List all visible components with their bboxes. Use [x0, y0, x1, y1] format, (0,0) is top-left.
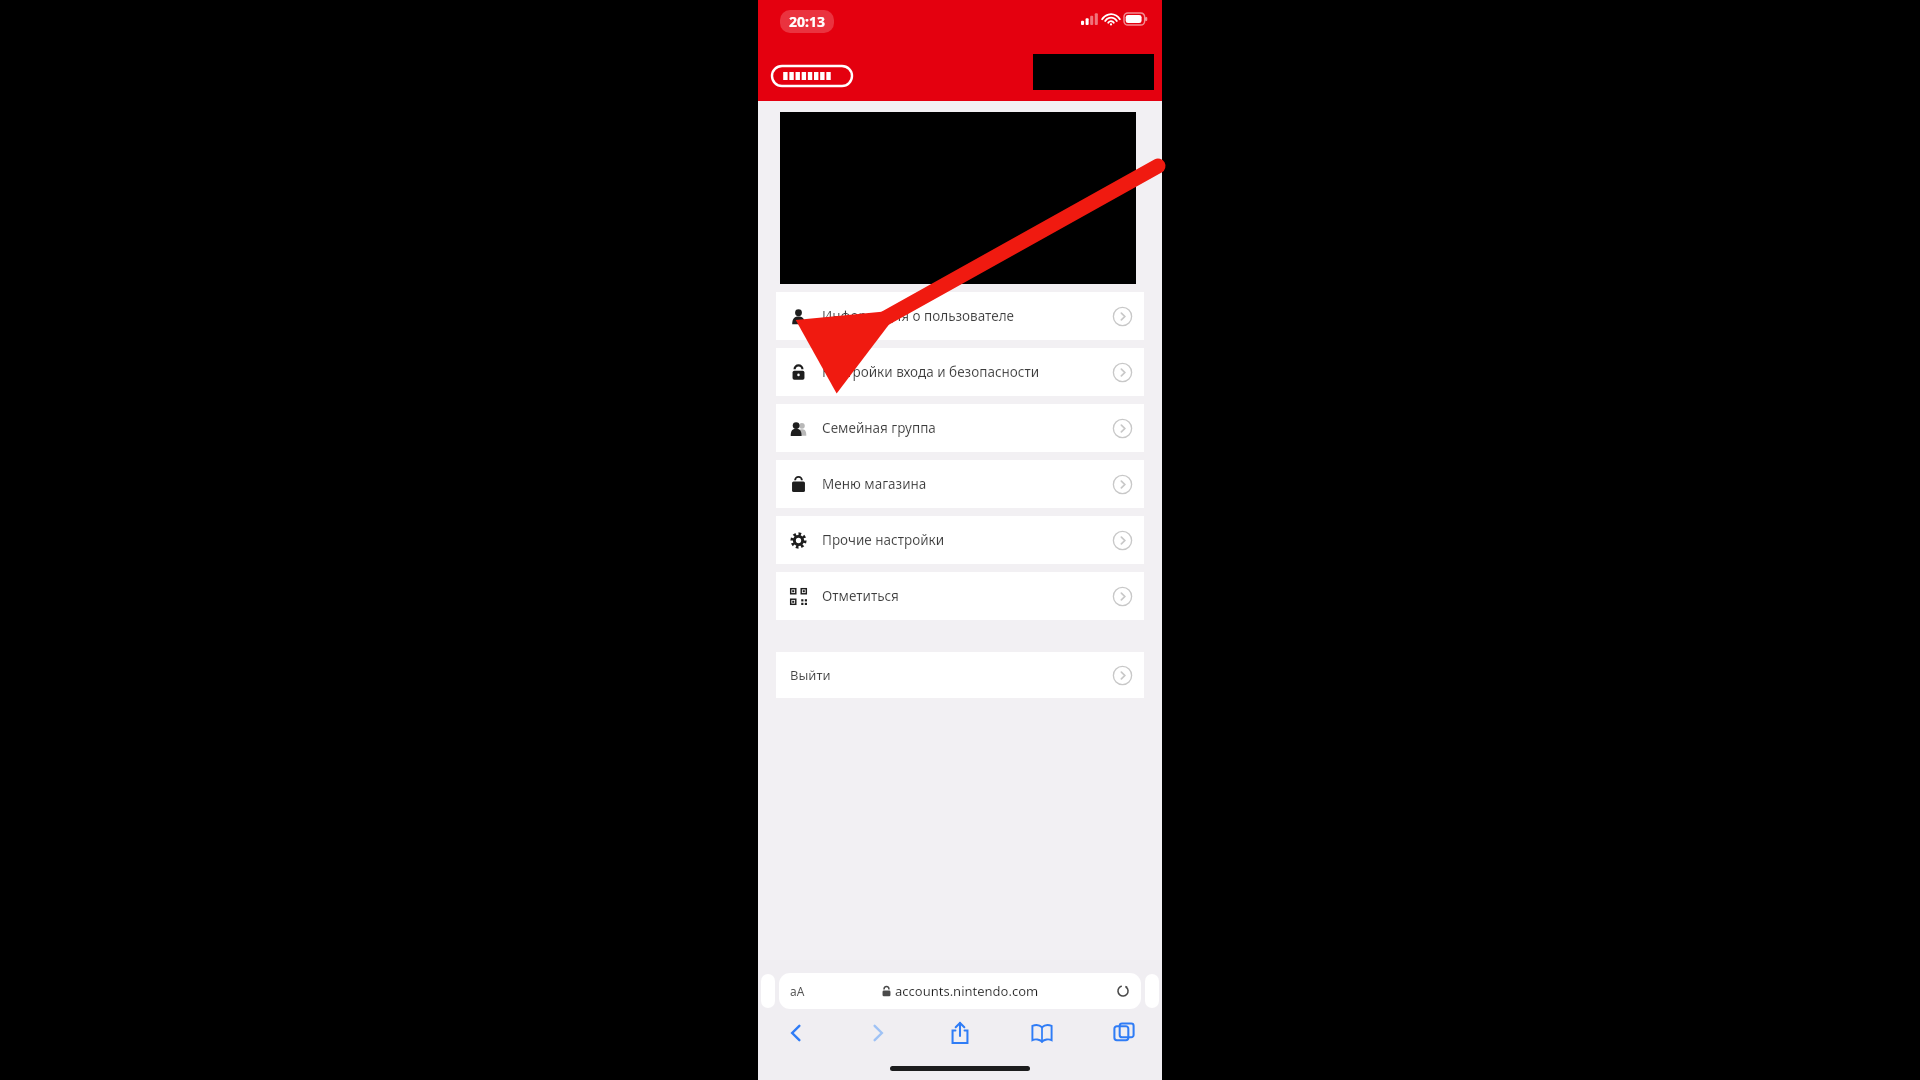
staticText: Настройки входа и безопасности [822, 363, 1113, 381]
button[interactable]: Настройки входа и безопасности [776, 348, 1144, 396]
button[interactable]: Next tab [1145, 974, 1159, 1008]
button[interactable]: Выйти [776, 652, 1144, 698]
button[interactable]: Семейная группа [776, 404, 1144, 452]
staticText: Выйти [790, 666, 1113, 684]
button[interactable]: Прочие настройки [776, 516, 1144, 564]
staticText: Меню магазина [822, 475, 1113, 493]
button[interactable]: Forward [856, 1011, 900, 1055]
button[interactable]: Back [774, 1011, 818, 1055]
button[interactable]: Меню магазина [776, 460, 1144, 508]
staticText: аА [790, 983, 805, 999]
staticText: Прочие настройки [822, 531, 1113, 549]
button[interactable]: Отметиться [776, 572, 1144, 620]
button[interactable]: Share [938, 1011, 982, 1055]
button[interactable]: Nintendo home [772, 66, 852, 86]
staticText: Информация о пользователе [822, 307, 1113, 325]
staticText: Семейная группа [822, 419, 1113, 437]
button[interactable]: Previous tab [761, 974, 775, 1008]
staticText: Отметиться [822, 587, 1113, 605]
staticText: 20:13 [789, 12, 825, 31]
button[interactable]: Bookmarks [1020, 1011, 1064, 1055]
button[interactable]: Информация о пользователе [776, 292, 1144, 340]
button[interactable]: аА [779, 973, 1141, 1009]
staticText: accounts.nintendo.com [895, 982, 1039, 1000]
button[interactable]: Tabs [1102, 1011, 1146, 1055]
